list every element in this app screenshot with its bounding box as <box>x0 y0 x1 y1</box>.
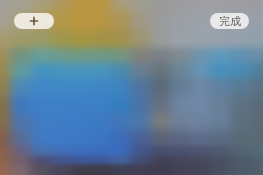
button[interactable]: 完成 <box>210 13 249 29</box>
staticText: 完成 <box>219 14 241 28</box>
button[interactable]: Add <box>14 13 54 29</box>
